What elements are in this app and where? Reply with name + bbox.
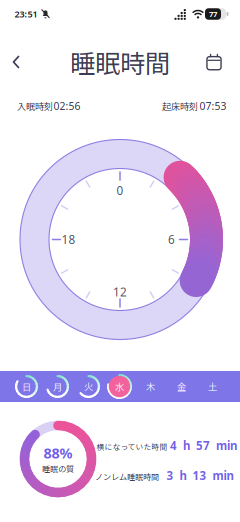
button[interactable]: 金: [167, 372, 195, 400]
staticText: 4 h 57 min: [170, 438, 237, 453]
button[interactable]: 日: [12, 372, 40, 400]
staticText: 睡眠時間: [70, 44, 170, 80]
staticText: 火: [84, 380, 93, 393]
button[interactable]: 火: [74, 372, 102, 400]
button[interactable]: 土: [198, 372, 226, 400]
staticText: 07:53: [199, 99, 226, 113]
staticText: 3 h 13 min: [166, 468, 233, 483]
button[interactable]: 木: [136, 372, 164, 400]
staticText: 02:56: [53, 99, 80, 113]
staticText: 18: [61, 231, 75, 247]
staticText: 横になっていた時間: [96, 441, 167, 452]
staticText: 0: [116, 182, 123, 198]
staticText: 6: [168, 231, 175, 247]
button[interactable]: 水: [105, 372, 133, 400]
button[interactable]: 月: [43, 372, 71, 400]
button[interactable]: [5, 51, 27, 72]
staticText: 入眠時刻: [17, 99, 53, 112]
button[interactable]: [202, 50, 226, 74]
staticText: 起床時刻: [162, 99, 198, 112]
staticText: 土: [208, 380, 217, 393]
staticText: 88%: [43, 443, 72, 463]
staticText: 日: [22, 380, 31, 393]
staticText: 77: [209, 9, 217, 19]
staticText: ノンレム睡眠時間: [95, 471, 159, 482]
staticText: 金: [177, 380, 186, 393]
staticText: 12: [113, 284, 127, 300]
staticText: 23:51: [14, 8, 37, 20]
staticText: 水: [115, 380, 124, 393]
staticText: 睡眠の質: [42, 463, 74, 474]
staticText: 月: [53, 380, 62, 393]
staticText: 木: [146, 380, 155, 393]
